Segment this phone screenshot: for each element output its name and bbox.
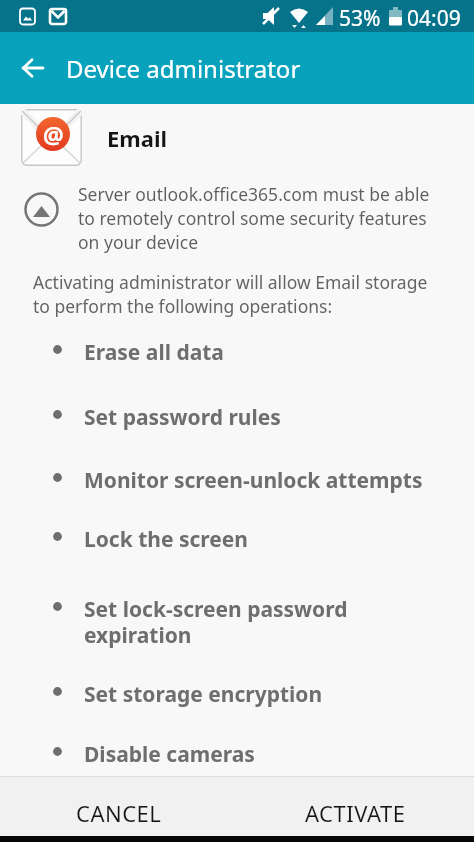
staticText: Set password rules (84, 403, 281, 432)
staticText: 53% (339, 4, 381, 33)
staticText: 04:09 (407, 4, 461, 33)
button[interactable] (0, 32, 66, 104)
button[interactable]: ACTIVATE (237, 777, 474, 842)
staticText: Disable cameras (84, 740, 255, 769)
staticText: Lock the screen (84, 525, 249, 554)
staticText: Set storage encryption (84, 680, 323, 709)
staticText: @ (43, 119, 64, 150)
staticText: Device administrator (66, 52, 301, 85)
staticText: Erase all data (84, 338, 224, 367)
staticText: Email (107, 123, 168, 153)
staticText: Monitor screen-unlock attempts (84, 466, 423, 495)
staticText: CANCEL (76, 798, 162, 828)
staticText: ACTIVATE (305, 798, 406, 828)
staticText: Server outlook.office365.com must be abl… (78, 182, 430, 254)
button[interactable]: CANCEL (0, 777, 237, 842)
staticText: Set lock-screen password expiration (84, 595, 348, 650)
staticText: Activating administrator will allow Emai… (33, 270, 428, 318)
